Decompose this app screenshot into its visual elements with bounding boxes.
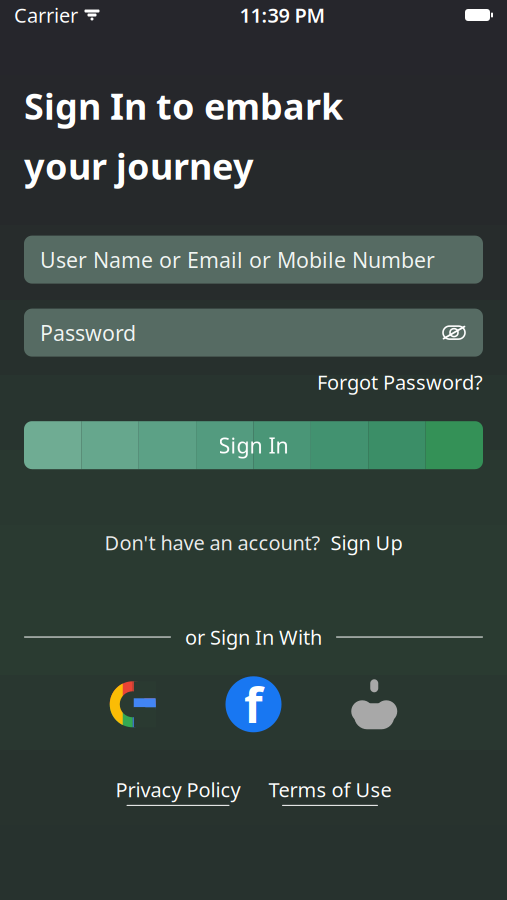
staticText: Privacy Policy bbox=[115, 776, 240, 803]
staticText: Don't have an account? bbox=[104, 529, 320, 556]
button[interactable]: Terms of Use bbox=[268, 776, 391, 806]
staticText: Forgot Password? bbox=[317, 369, 483, 395]
button[interactable]: Forgot Password? bbox=[317, 369, 483, 395]
staticText: Terms of Use bbox=[268, 776, 391, 803]
button[interactable]: Password bbox=[24, 309, 483, 357]
staticText: User Name or Email or Mobile Number bbox=[40, 245, 435, 274]
staticText: Sign In bbox=[218, 431, 288, 459]
staticText: Sign Up bbox=[330, 529, 402, 556]
staticText: your journey bbox=[24, 142, 254, 190]
button[interactable]: Sign in with Apple bbox=[349, 678, 399, 730]
staticText: Password bbox=[40, 318, 136, 347]
button[interactable]: Sign in with Google bbox=[108, 679, 158, 729]
staticText: f bbox=[244, 672, 263, 736]
staticText: or Sign In With bbox=[185, 624, 322, 650]
button[interactable]: Sign In bbox=[24, 421, 483, 469]
button[interactable]: Sign Up bbox=[330, 529, 402, 556]
staticText: Carrier bbox=[14, 2, 78, 28]
staticText: 11:39 PM bbox=[239, 2, 325, 28]
staticText: Sign In to embark bbox=[24, 82, 343, 130]
button[interactable]: Sign in with Facebook bbox=[225, 676, 281, 732]
button[interactable]: User Name or Email or Mobile Number bbox=[24, 236, 483, 284]
button[interactable]: Privacy Policy bbox=[115, 776, 240, 806]
